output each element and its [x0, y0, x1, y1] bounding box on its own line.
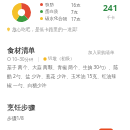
staticText: 脂肪 [45, 2, 54, 8]
staticText: 蛋白质 [45, 9, 59, 15]
staticText: 茄子 两个、大蒜 两颗、青椒 两个、生抽 30勺）、陈醋 2勺、盐 少许、葱花 … [7, 64, 119, 88]
staticText: 16克 [71, 2, 81, 8]
staticText: 步骤1/8 [7, 115, 24, 122]
staticText: 烹饪步骤 [7, 103, 35, 112]
staticText: 7克 [71, 9, 78, 15]
staticText: 碳水化合物 [45, 16, 67, 22]
staticText: 241 [103, 2, 118, 14]
staticText: 放心吃吧，是低卡路里的一道菜! [12, 26, 78, 32]
staticText: 17克 [71, 16, 81, 22]
staticText: 切墩（初级） [48, 56, 75, 62]
staticText: 加入采购清单 [88, 50, 115, 56]
staticText: 10~30分钟 [12, 56, 34, 62]
staticText: 千卡 [107, 15, 115, 20]
button[interactable] [0, 126, 130, 130]
staticText: 食材清单 [7, 46, 35, 55]
button[interactable]: 加入采购清单 [88, 50, 115, 56]
staticText: | [37, 56, 40, 62]
